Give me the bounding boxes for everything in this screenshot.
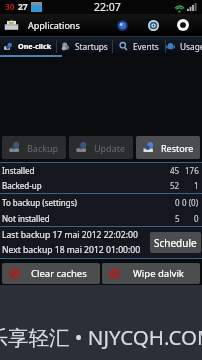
staticText: 27: [18, 1, 28, 13]
staticText: 0: [175, 197, 180, 208]
button[interactable]: Clear caches: [2, 263, 100, 284]
staticText: Installed: [2, 165, 35, 176]
staticText: Backed-up: [2, 180, 42, 191]
button[interactable]: One-click: [0, 37, 56, 55]
staticText: Events: [133, 41, 159, 52]
button[interactable]: Update: [69, 136, 133, 159]
staticText: Schedule: [154, 236, 197, 250]
staticText: Startups: [75, 41, 108, 52]
staticText: 0 (0): [182, 197, 199, 208]
staticText: Update: [94, 142, 126, 154]
button[interactable]: Wipe dalvik: [102, 263, 200, 284]
staticText: 176: [185, 165, 199, 176]
button[interactable]: Installed: [0, 163, 202, 178]
staticText: Applications: [28, 19, 80, 31]
staticText: 52: [170, 180, 180, 191]
button[interactable]: To backup (settings): [0, 194, 202, 210]
button[interactable]: Usage: [166, 37, 202, 55]
staticText: Wipe dalvik: [133, 267, 184, 280]
staticText: 22:07: [94, 0, 121, 14]
staticText: Backup: [27, 142, 59, 154]
button[interactable]: Events: [113, 37, 165, 55]
staticText: 1: [194, 180, 199, 191]
staticText: 30: [5, 1, 15, 13]
staticText: 45: [170, 165, 180, 176]
button[interactable]: Startups: [57, 37, 112, 55]
button[interactable]: Settings: [142, 14, 164, 36]
button[interactable]: Restore: [136, 136, 200, 159]
staticText: Restore: [161, 142, 194, 154]
staticText: 0: [194, 213, 199, 224]
staticText: Usage: [180, 41, 202, 52]
button[interactable]: Backed-up: [0, 178, 202, 193]
staticText: To backup (settings): [2, 197, 77, 208]
button[interactable]: Filter: [111, 14, 133, 36]
staticText: Next backup 18 mai 2012 01:00:00: [2, 244, 141, 256]
staticText: 5: [175, 213, 180, 224]
button[interactable]: Not installed: [0, 210, 202, 226]
button[interactable]: Refresh: [172, 14, 194, 36]
staticText: Clear caches: [31, 267, 87, 280]
staticText: Last backup 17 mai 2012 22:02:00: [2, 229, 138, 241]
button[interactable]: Backup: [2, 136, 66, 159]
button[interactable]: Schedule: [150, 232, 201, 253]
staticText: Not installed: [2, 213, 50, 224]
staticText: 乐享轻汇 • NJYCQH.COM: [0, 323, 202, 351]
staticText: One-click: [18, 41, 52, 51]
